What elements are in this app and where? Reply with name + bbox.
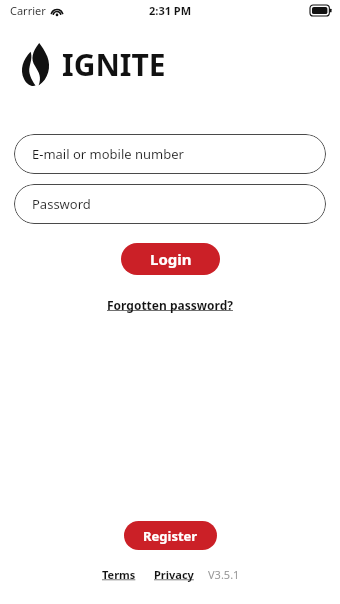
staticText: Terms [102,567,136,582]
staticText: IGNITE [62,44,166,85]
staticText: Carrier [10,3,46,18]
staticText: 2:31 PM [149,3,192,18]
staticText: Forgotten password? [107,297,233,313]
staticText: E-mail or mobile number [32,145,184,163]
button[interactable]: Forgotten password? [103,295,237,315]
button[interactable]: Privacy [152,565,196,584]
button[interactable]: Register [124,521,217,550]
staticText: Register [143,527,198,545]
staticText: V3.5.1 [208,567,240,582]
button[interactable]: Terms [100,565,138,584]
staticText: Login [150,249,192,269]
button[interactable]: Login [121,243,220,275]
button[interactable]: Password [14,184,326,224]
staticText: Password [32,195,91,213]
staticText: Privacy [154,567,194,582]
button[interactable]: E-mail or mobile number [14,134,326,174]
